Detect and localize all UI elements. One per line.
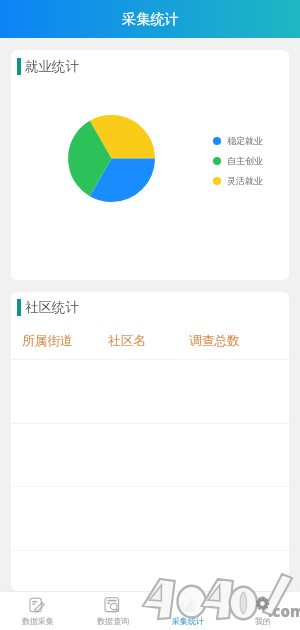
- staticText: 自主创业: [227, 155, 263, 166]
- staticText: 采集统计: [122, 10, 179, 28]
- staticText: 社区统计: [25, 299, 79, 316]
- other: 数据采集: [29, 596, 46, 613]
- staticText: 数据查询: [97, 616, 129, 626]
- button[interactable]: 我的: [225, 592, 300, 630]
- staticText: 就业统计: [25, 58, 79, 75]
- staticText: 所属街道: [22, 333, 73, 349]
- staticText: 社区名: [108, 333, 147, 349]
- staticText: 灵活就业: [227, 175, 263, 186]
- button[interactable]: 数据采集: [0, 592, 75, 630]
- staticText: 数据采集: [22, 616, 54, 626]
- staticText: 采集统计: [172, 616, 204, 626]
- staticText: .com: [268, 601, 300, 621]
- button[interactable]: 采集统计: [150, 592, 225, 630]
- staticText: 我的: [255, 616, 271, 626]
- other: 数据查询: [104, 596, 121, 613]
- button[interactable]: 数据查询: [75, 592, 150, 630]
- other: 采集统计: [179, 596, 196, 613]
- other: 我的: [254, 596, 271, 613]
- staticText: 调查总数: [189, 333, 240, 349]
- staticText: 稳定就业: [227, 135, 263, 146]
